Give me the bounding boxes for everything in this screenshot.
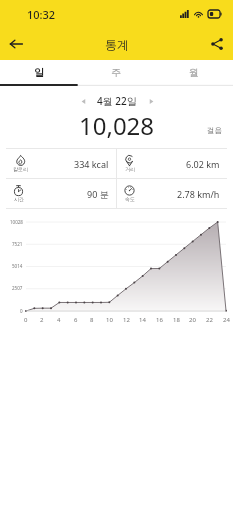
staticText: 0	[20, 308, 23, 314]
staticText: 10028	[10, 219, 23, 225]
button[interactable]: 주	[77, 60, 155, 84]
button[interactable]: 일	[0, 60, 77, 84]
button[interactable]: Back	[0, 28, 32, 60]
staticText: 334 kcal	[74, 158, 109, 170]
staticText: 2.78 km/h	[177, 188, 220, 200]
staticText: 18	[173, 316, 180, 324]
staticText: 12	[123, 316, 130, 324]
staticText: 통계	[105, 37, 129, 52]
button[interactable]: 시간	[6, 179, 116, 208]
staticText: 7521	[12, 241, 23, 247]
staticText: 속도	[125, 196, 135, 202]
staticText: 24	[223, 316, 230, 324]
staticText: 4	[57, 316, 61, 324]
staticText: 10:32	[27, 7, 56, 22]
staticText: 16	[156, 316, 163, 324]
staticText: 일	[34, 66, 44, 79]
staticText: 칼로리	[13, 166, 28, 172]
staticText: 20	[189, 316, 196, 324]
staticText: 6.02 km	[186, 158, 220, 170]
staticText: 걸음	[207, 126, 222, 135]
button[interactable]: 월	[155, 60, 233, 84]
button[interactable]: Previous day	[75, 93, 91, 109]
staticText: 2507	[12, 285, 23, 291]
staticText: 10	[106, 316, 113, 324]
staticText: 5014	[12, 263, 23, 269]
button[interactable]: 속도	[117, 179, 227, 208]
staticText: 90 분	[87, 188, 109, 200]
staticText: 월	[189, 66, 199, 79]
staticText: 6	[74, 316, 78, 324]
staticText: 2	[40, 316, 44, 324]
button[interactable]: Share	[201, 28, 233, 60]
button[interactable]: 칼로리	[6, 149, 116, 178]
staticText: 4월 22일	[97, 94, 137, 108]
staticText: 22	[206, 316, 213, 324]
staticText: 주	[111, 66, 121, 79]
staticText: 0	[24, 316, 28, 324]
staticText: 8	[90, 316, 94, 324]
staticText: 10,028	[79, 109, 155, 139]
staticText: 14	[139, 316, 146, 324]
button[interactable]: Next day	[143, 93, 159, 109]
button[interactable]: 거리	[117, 149, 227, 178]
staticText: 거리	[125, 166, 135, 172]
staticText: 시간	[14, 196, 24, 202]
